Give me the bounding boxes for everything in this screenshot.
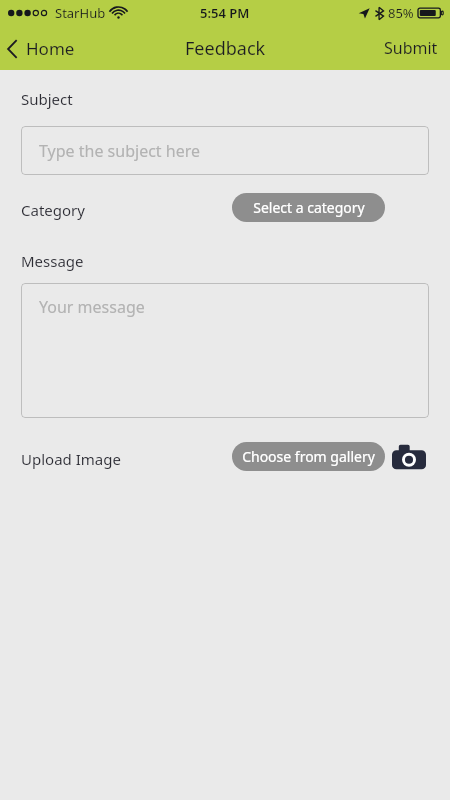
staticText: 5:54 PM xyxy=(200,4,250,22)
staticText: Submit xyxy=(384,37,438,59)
staticText: Feedback xyxy=(185,36,266,61)
staticText: Type the subject here xyxy=(39,140,200,162)
staticText: StarHub xyxy=(55,4,106,22)
button[interactable]: Submit xyxy=(372,31,450,65)
staticText: Select a category xyxy=(253,198,365,217)
button[interactable]: Choose from gallery xyxy=(232,442,385,471)
staticText: Choose from gallery xyxy=(242,447,375,466)
staticText: Category xyxy=(21,200,85,220)
button[interactable]: Your message xyxy=(21,283,429,418)
button[interactable]: Home xyxy=(0,33,85,64)
staticText: 85% xyxy=(388,4,414,22)
staticText: Home xyxy=(26,37,75,60)
staticText: Message xyxy=(21,251,84,271)
staticText: Your message xyxy=(39,296,145,318)
staticText: Upload Image xyxy=(21,449,121,469)
button[interactable]: Take photo with camera xyxy=(390,441,428,473)
button[interactable]: Select a category xyxy=(232,193,385,222)
staticText: Subject xyxy=(21,89,73,109)
button[interactable]: Type the subject here xyxy=(21,126,429,175)
